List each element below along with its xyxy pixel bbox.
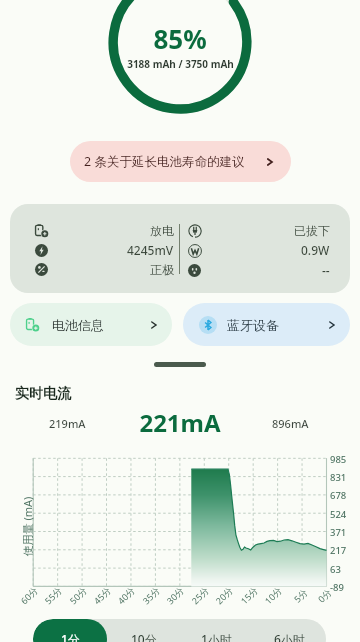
staticText: 217	[330, 544, 347, 557]
staticText: 蓝牙设备	[227, 317, 279, 333]
staticText: 0.9W	[301, 242, 330, 258]
button[interactable]: 蓝牙设备	[183, 303, 350, 346]
staticText: 电池信息	[52, 317, 104, 333]
staticText: 正极	[150, 262, 174, 277]
staticText: 63	[330, 563, 341, 576]
staticText: 使用量 (mA)	[19, 496, 34, 556]
staticText: 35分	[140, 584, 162, 606]
staticText: 219mA	[49, 416, 86, 431]
staticText: 30分	[164, 584, 186, 606]
staticText: 371	[330, 526, 347, 539]
staticText: 60分	[18, 584, 40, 606]
staticText: 5分	[291, 585, 310, 605]
staticText: 25分	[189, 584, 211, 606]
staticText: 实时电流	[15, 385, 71, 403]
staticText: 10分	[262, 584, 284, 606]
staticText: 55分	[42, 584, 64, 606]
staticText: 1分	[61, 631, 80, 642]
button[interactable]: 1小时	[180, 619, 253, 642]
staticText: 85%	[153, 21, 207, 56]
staticText: 已拔下	[294, 223, 330, 238]
staticText: 524	[330, 508, 347, 521]
staticText: 2 条关于延长电池寿命的建议	[84, 153, 245, 170]
button[interactable]: 6小时	[253, 619, 326, 642]
staticText: 831	[330, 471, 347, 484]
staticText: -89	[330, 581, 344, 594]
staticText: 896mA	[272, 416, 309, 431]
staticText: --	[322, 262, 330, 278]
staticText: 45分	[91, 584, 113, 606]
button[interactable]: 2 条关于延长电池寿命的建议	[70, 141, 291, 182]
staticText: 10分	[131, 631, 157, 642]
staticText: 20分	[213, 584, 235, 606]
staticText: 50分	[67, 584, 89, 606]
staticText: 1小时	[201, 631, 232, 642]
staticText: 3188 mAh / 3750 mAh	[127, 57, 234, 71]
staticText: 0分	[315, 585, 334, 605]
staticText: 15分	[238, 584, 260, 606]
staticText: 985	[330, 453, 347, 466]
button[interactable]: 10分	[107, 619, 180, 642]
staticText: 4245mV	[127, 242, 174, 258]
button[interactable]: 电池信息	[10, 303, 172, 346]
staticText: 221mA	[0, 406, 360, 439]
staticText: 放电	[150, 223, 174, 238]
staticText: 40分	[115, 584, 137, 606]
button[interactable]: 1分	[33, 619, 107, 642]
staticText: 678	[330, 489, 347, 502]
staticText: 6小时	[274, 631, 305, 642]
